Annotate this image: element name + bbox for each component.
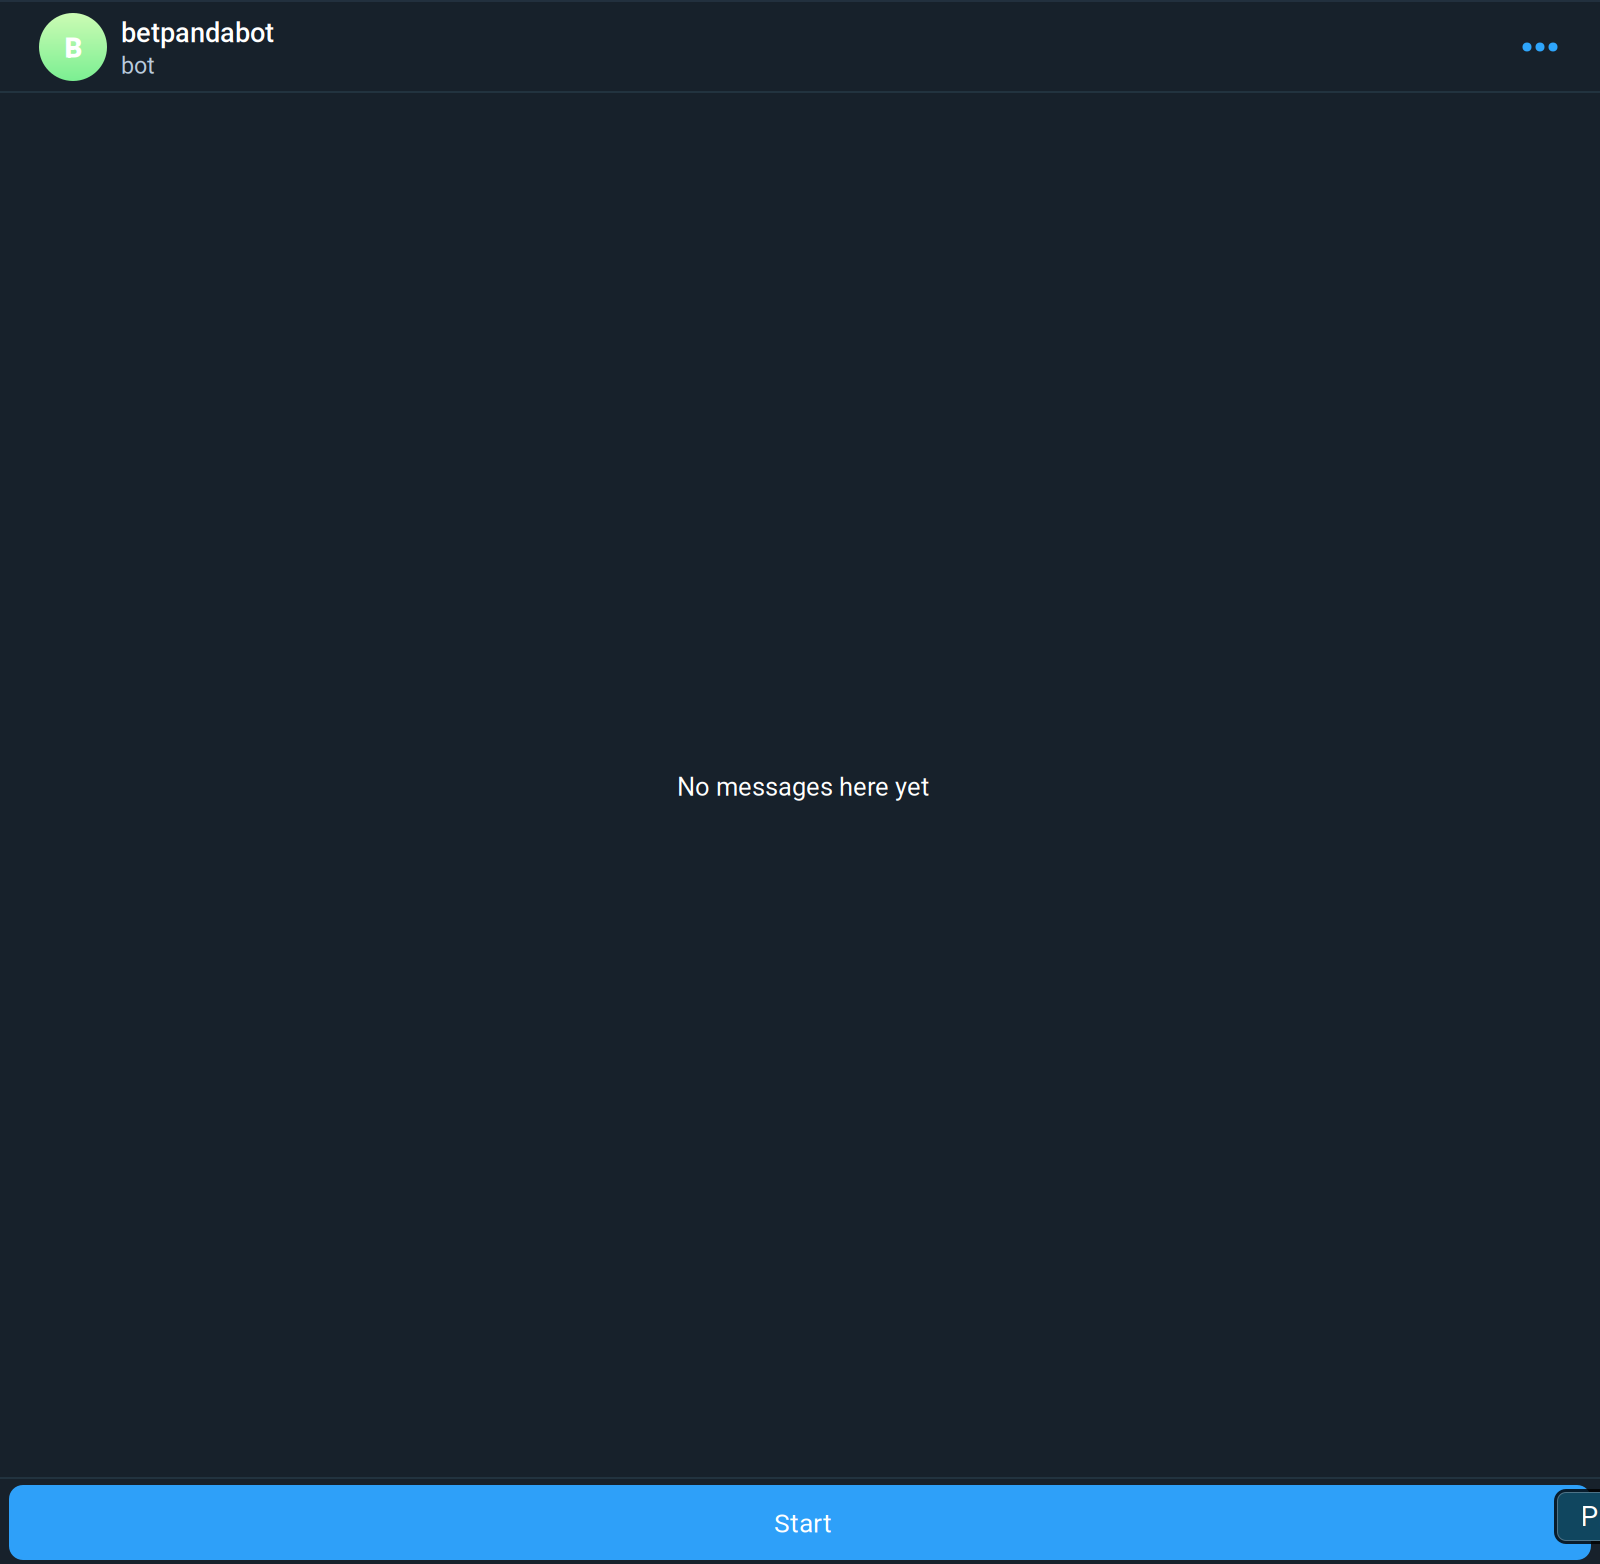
button[interactable]: Start [9, 1485, 1591, 1560]
staticText: betpandabot [121, 17, 274, 49]
button[interactable]: More options [1505, 3, 1575, 91]
staticText: B [64, 32, 82, 64]
staticText: Preview [1580, 1500, 1600, 1533]
staticText: bot [121, 52, 155, 79]
button[interactable]: Preview [1557, 1492, 1600, 1541]
staticText: No messages here yet [677, 772, 929, 802]
button[interactable]: B [0, 2, 300, 91]
staticText: Start [774, 1508, 832, 1539]
